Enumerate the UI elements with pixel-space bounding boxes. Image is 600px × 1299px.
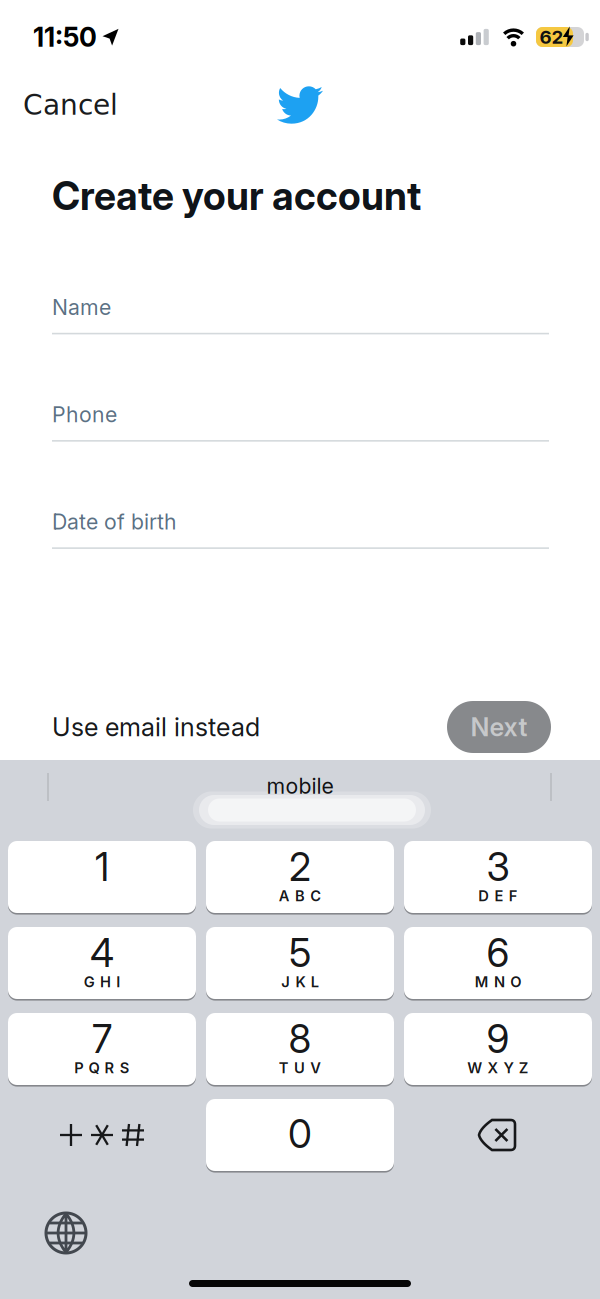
staticText: Phone	[52, 402, 117, 427]
staticText: Z	[519, 1059, 529, 1077]
staticText: Use email instead	[52, 712, 260, 742]
button[interactable]: Name	[52, 295, 549, 334]
button[interactable]: 7	[8, 1013, 196, 1085]
staticText: 1	[95, 844, 109, 890]
button[interactable]: 6	[404, 927, 592, 999]
staticText: A	[279, 887, 290, 905]
staticText: U	[294, 1059, 305, 1077]
button[interactable]: Next keyboard	[46, 1213, 86, 1253]
staticText: 0	[288, 1111, 312, 1157]
button[interactable]: 0	[206, 1099, 394, 1171]
staticText: Date of birth	[52, 509, 177, 534]
staticText: C	[310, 887, 321, 905]
staticText: H	[100, 973, 111, 991]
staticText: 8	[288, 1016, 311, 1062]
staticText: X	[487, 1059, 498, 1077]
staticText: mobile	[266, 773, 333, 799]
button[interactable]: 9	[404, 1013, 592, 1085]
staticText: Name	[52, 295, 111, 320]
button[interactable]: Use email instead	[52, 712, 260, 742]
button[interactable]: Date of birth	[52, 509, 549, 549]
staticText: W	[467, 1059, 482, 1077]
button[interactable]: Phone	[52, 402, 549, 442]
staticText: 5	[289, 930, 311, 976]
button[interactable]: 4	[8, 927, 196, 999]
staticText: R	[105, 1059, 115, 1077]
staticText: Y	[504, 1059, 514, 1077]
staticText: O	[510, 973, 521, 991]
staticText: 11:50	[33, 21, 97, 53]
button[interactable]: 1	[8, 841, 196, 913]
staticText: M	[475, 973, 489, 991]
button[interactable]: 8	[206, 1013, 394, 1085]
staticText: 2	[289, 844, 311, 890]
button[interactable]: Autofill phone number	[193, 791, 431, 828]
staticText: Next	[470, 712, 527, 742]
staticText: F	[509, 887, 518, 905]
staticText: V	[310, 1059, 321, 1077]
staticText: I	[116, 973, 120, 991]
staticText: Create your account	[52, 173, 421, 219]
staticText: B	[295, 887, 305, 905]
button[interactable]: Symbols	[8, 1099, 196, 1171]
button[interactable]: Delete	[404, 1099, 592, 1171]
staticText: J	[281, 973, 290, 991]
staticText: Q	[88, 1059, 99, 1077]
staticText: E	[494, 887, 503, 905]
staticText: T	[279, 1059, 289, 1077]
staticText: 4	[90, 930, 114, 976]
button[interactable]: Cancel	[0, 89, 118, 121]
button[interactable]: Next	[447, 701, 551, 753]
staticText: S	[120, 1059, 130, 1077]
staticText: K	[295, 973, 305, 991]
staticText: 7	[92, 1016, 112, 1062]
staticText: Cancel	[23, 89, 118, 121]
button[interactable]: 3	[404, 841, 592, 913]
staticText: L	[311, 973, 319, 991]
button[interactable]: 5	[206, 927, 394, 999]
staticText: 9	[486, 1016, 509, 1062]
staticText: G	[84, 973, 95, 991]
staticText: 3	[486, 844, 509, 890]
staticText: N	[494, 973, 505, 991]
staticText: D	[478, 887, 489, 905]
staticText: P	[74, 1059, 83, 1077]
staticText: 6	[486, 930, 509, 976]
button[interactable]: 2	[206, 841, 394, 913]
staticText: 62	[539, 26, 563, 48]
